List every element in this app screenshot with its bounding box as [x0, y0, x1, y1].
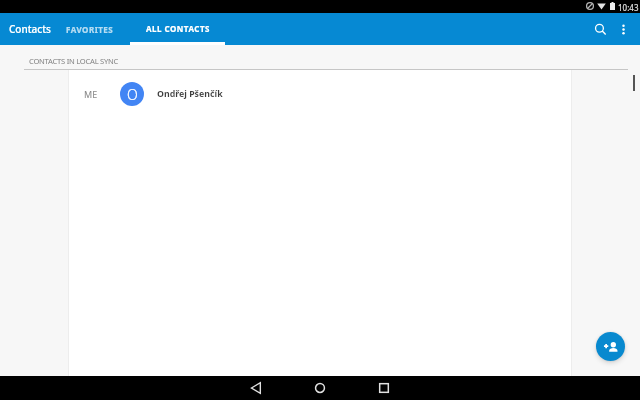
button[interactable]: Recent apps — [372, 376, 396, 400]
staticText: Ondřej Pšenčík — [157, 88, 223, 100]
button[interactable]: ME — [69, 71, 571, 116]
button[interactable]: Back — [244, 376, 268, 400]
staticText: Contacts — [9, 22, 51, 36]
button[interactable]: FAVORITES — [61, 13, 119, 45]
staticText: O — [127, 85, 138, 104]
button[interactable]: Home — [308, 376, 332, 400]
staticText: CONTACTS IN LOCAL SYNC — [29, 56, 119, 66]
staticText: ALL CONTACTS — [146, 23, 210, 34]
button[interactable]: More options — [611, 17, 635, 41]
button[interactable]: Add contact — [596, 332, 625, 361]
button[interactable]: Contacts — [4, 13, 56, 45]
staticText: ME — [84, 88, 98, 100]
button[interactable]: Search — [588, 17, 612, 41]
button[interactable]: ALL CONTACTS — [130, 13, 225, 45]
staticText: FAVORITES — [66, 24, 114, 35]
staticText: 10:43 — [618, 2, 639, 13]
